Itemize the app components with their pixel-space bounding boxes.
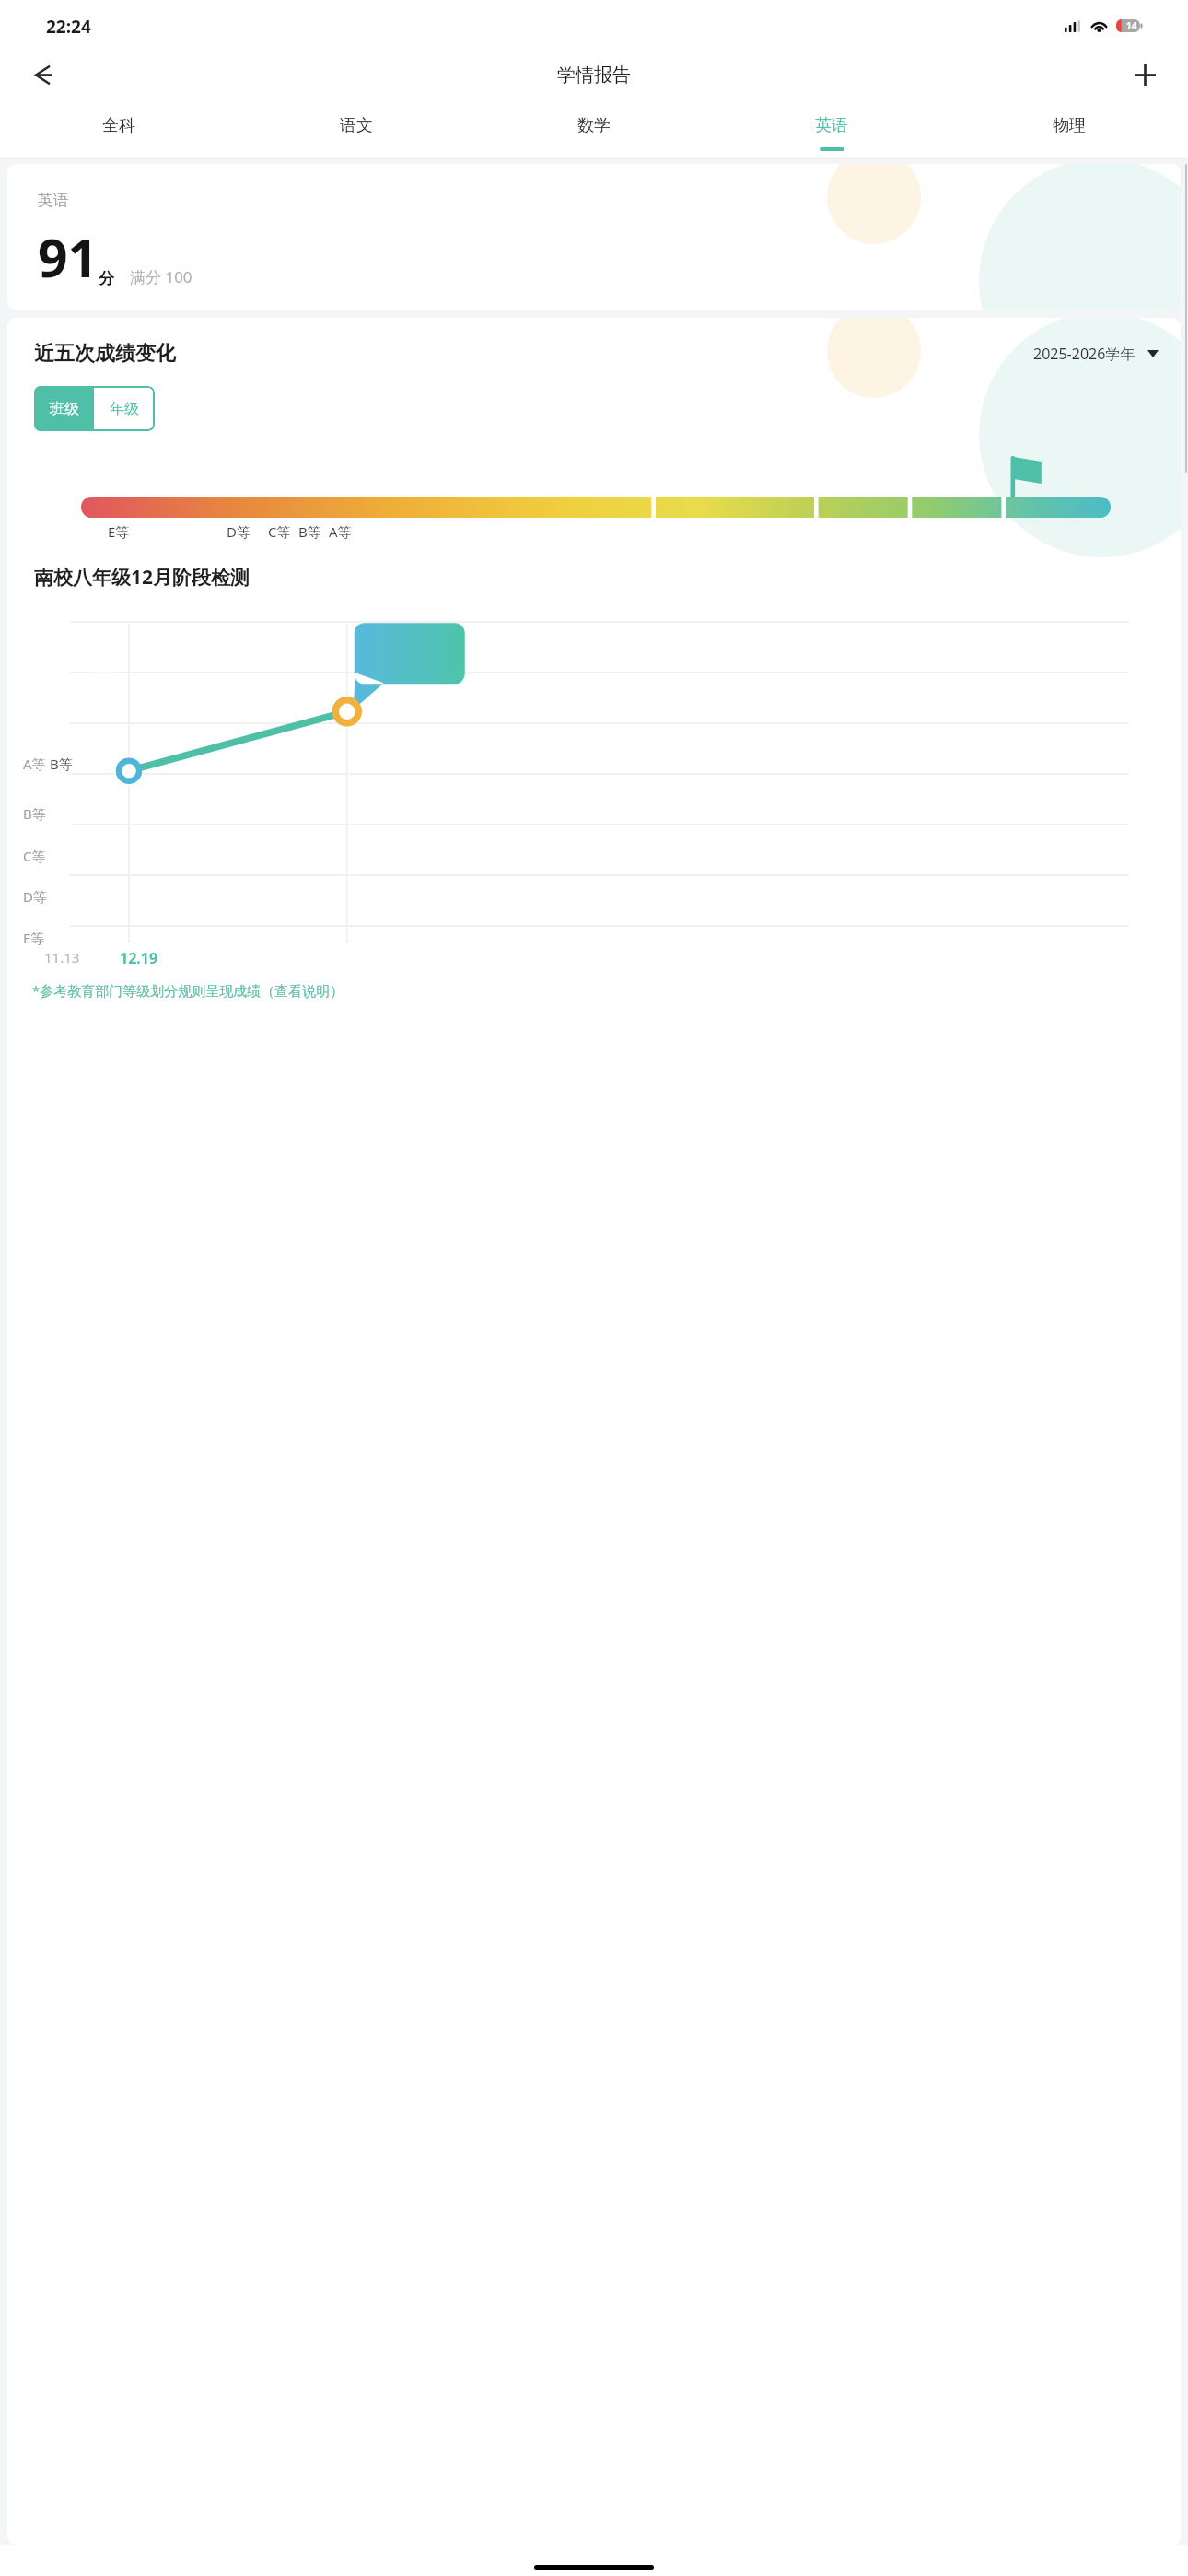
button[interactable]: 数学 (475, 100, 713, 159)
staticText: A等 (92, 666, 117, 686)
button[interactable]: *参考教育部门等级划分规则呈现成绩（查看说明） (32, 981, 344, 1000)
staticText: 22:24 (46, 15, 91, 39)
button[interactable]: 2025-2026学年 (1033, 344, 1159, 364)
staticText: C等 (23, 847, 46, 865)
staticText: B等 (23, 804, 46, 823)
staticText: A等 (23, 755, 46, 773)
button[interactable]: 班级 (34, 386, 94, 431)
button[interactable]: 物理 (950, 100, 1188, 159)
staticText: D等 (23, 887, 47, 906)
staticText: A等 (329, 522, 352, 541)
staticText: 南校八年级12月阶段检测 (34, 564, 250, 591)
staticText: B等 (50, 755, 73, 773)
button[interactable]: 全科 (0, 100, 238, 159)
staticText: B等 (298, 522, 321, 541)
button[interactable]: Back (20, 52, 66, 98)
staticText: 91 (38, 221, 99, 293)
staticText: 2025-2026学年 (1033, 344, 1136, 364)
staticText: 学情报告 (557, 64, 631, 87)
staticText: 近五次成绩变化 (34, 341, 176, 367)
staticText: 语文 (340, 115, 373, 136)
staticText: 班级 (50, 400, 79, 418)
staticText: 英语 (38, 191, 69, 210)
staticText: 满分 100 (130, 266, 192, 287)
staticText: 全科 (102, 115, 135, 136)
staticText: 数学 (577, 115, 611, 136)
staticText: C等 (268, 522, 291, 541)
staticText: 物理 (1053, 115, 1086, 136)
staticText: 英语 (815, 115, 848, 136)
button[interactable]: 年级 (94, 386, 155, 431)
staticText: E等 (23, 929, 45, 947)
staticText: E等 (108, 522, 130, 541)
staticText: 12.19 (120, 948, 158, 968)
staticText: 分 (99, 269, 114, 288)
staticText: 11.13 (44, 948, 80, 966)
button[interactable]: 语文 (238, 100, 475, 159)
staticText: 年级 (110, 400, 139, 418)
staticText: D等 (227, 522, 250, 541)
button[interactable]: 英语 (713, 100, 950, 159)
staticText: 14 (1126, 19, 1137, 32)
button[interactable]: Add (1122, 52, 1168, 98)
